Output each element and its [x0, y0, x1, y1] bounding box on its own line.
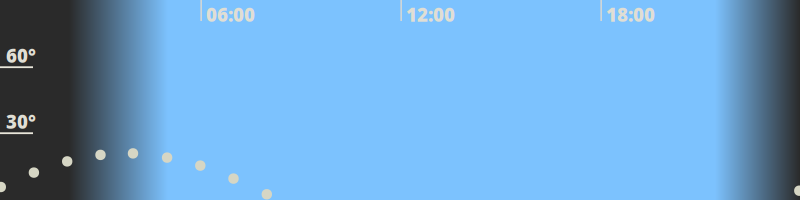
staticText: 12:00	[406, 2, 455, 27]
staticText: 18:00	[606, 2, 655, 27]
staticText: 60°	[6, 43, 36, 68]
staticText: 06:00	[206, 2, 255, 27]
staticText: 30°	[6, 109, 36, 134]
